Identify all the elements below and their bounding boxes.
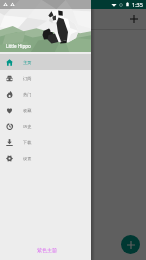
button[interactable]: 收藏 [0, 102, 91, 118]
staticText: 下载 [23, 140, 32, 145]
staticText: 1:35 [132, 1, 143, 8]
staticText: 热门 [23, 92, 32, 97]
button[interactable]: 设置 [0, 150, 91, 166]
button[interactable]: Add [121, 235, 140, 254]
staticText: Little Hippo [6, 43, 31, 49]
button[interactable]: Add [127, 12, 141, 26]
button[interactable]: 下载 [0, 134, 91, 150]
staticText: 收藏 [23, 108, 32, 113]
button[interactable]: 订阅 [0, 70, 91, 86]
staticText: 订阅 [23, 76, 32, 81]
staticText: 历史 [23, 124, 32, 129]
button[interactable]: 热门 [0, 86, 91, 102]
staticText: 紫色主题 [37, 247, 57, 253]
staticText: 设置 [23, 156, 32, 161]
button[interactable]: 主页 [0, 54, 91, 70]
button[interactable]: 历史 [0, 118, 91, 134]
staticText: 主页 [23, 60, 32, 65]
